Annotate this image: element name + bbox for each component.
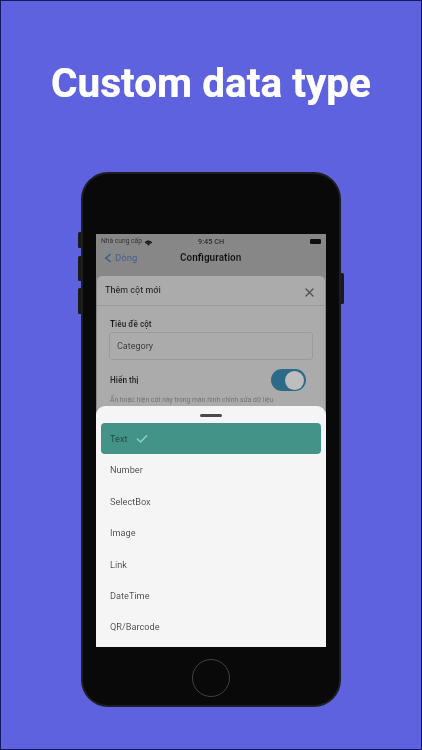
button[interactable]: Link [101,549,321,580]
button[interactable]: Dòng [103,252,138,263]
staticText: Nhà cung cấp [101,237,142,245]
button[interactable]: Text [101,423,321,454]
button[interactable]: Home [192,659,230,697]
staticText: Category [117,341,154,352]
staticText: Text [110,433,128,444]
staticText: Custom data type [51,59,371,106]
button[interactable]: QR/Barcode [101,611,321,642]
staticText: Tiêu đề cột [110,319,152,329]
staticText: Hiển thị [110,375,139,385]
staticText: Link [110,559,127,570]
staticText: Configuration [180,252,242,264]
staticText: Number [110,464,143,475]
staticText: Ẩn hoặc hiện cột này trong màn hình chỉn… [110,396,274,404]
button[interactable]: DateTime [101,580,321,611]
staticText: Image [110,527,136,538]
button[interactable]: Number [101,454,321,485]
button[interactable]: SelectBox [101,486,321,517]
staticText: QR/Barcode [110,621,160,632]
button[interactable]: Toggle visibility [271,369,306,391]
button[interactable]: Close [302,285,316,299]
button[interactable]: Category [109,332,313,360]
staticText: Thêm cột mới [105,285,161,296]
staticText: SelectBox [110,496,151,507]
staticText: 9:45 CH [198,237,225,246]
staticText: DateTime [110,590,150,601]
staticText: Dòng [115,252,138,263]
button[interactable]: Image [101,517,321,548]
